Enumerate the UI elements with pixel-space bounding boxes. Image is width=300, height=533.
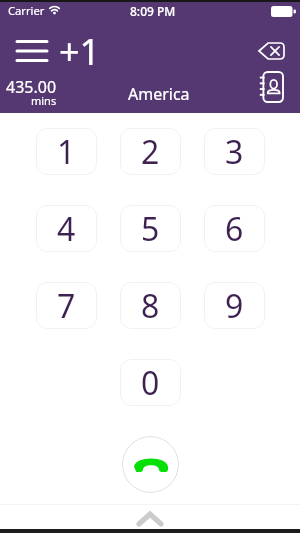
- button[interactable]: Expand: [0, 505, 300, 529]
- button[interactable]: 2: [120, 128, 181, 175]
- staticText: 7: [57, 284, 76, 328]
- button[interactable]: 1: [36, 128, 97, 175]
- staticText: 5: [141, 207, 160, 251]
- button[interactable]: 8: [120, 282, 181, 329]
- button[interactable]: Backspace: [254, 38, 288, 64]
- staticText: 6: [225, 207, 244, 251]
- button[interactable]: 0: [120, 359, 181, 406]
- button[interactable]: 6: [204, 205, 265, 252]
- staticText: 9: [225, 284, 244, 328]
- staticText: 8: [141, 284, 160, 328]
- button[interactable]: 7: [36, 282, 97, 329]
- staticText: Carrier: [8, 3, 45, 18]
- staticText: 2: [141, 130, 160, 174]
- staticText: America: [128, 83, 190, 105]
- staticText: 8:09 PM: [130, 3, 176, 19]
- staticText: 4: [57, 207, 76, 251]
- button[interactable]: 3: [204, 128, 265, 175]
- staticText: 0: [141, 361, 160, 405]
- button[interactable]: Call: [122, 436, 179, 493]
- button[interactable]: 9: [204, 282, 265, 329]
- button[interactable]: 5: [120, 205, 181, 252]
- button[interactable]: Menu: [9, 35, 54, 67]
- staticText: 1: [57, 130, 76, 174]
- staticText: +1: [59, 27, 101, 76]
- staticText: 3: [225, 130, 244, 174]
- button[interactable]: 4: [36, 205, 97, 252]
- staticText: 435.00: [6, 76, 57, 98]
- staticText: mins: [31, 93, 57, 108]
- button[interactable]: Contacts: [253, 69, 289, 105]
